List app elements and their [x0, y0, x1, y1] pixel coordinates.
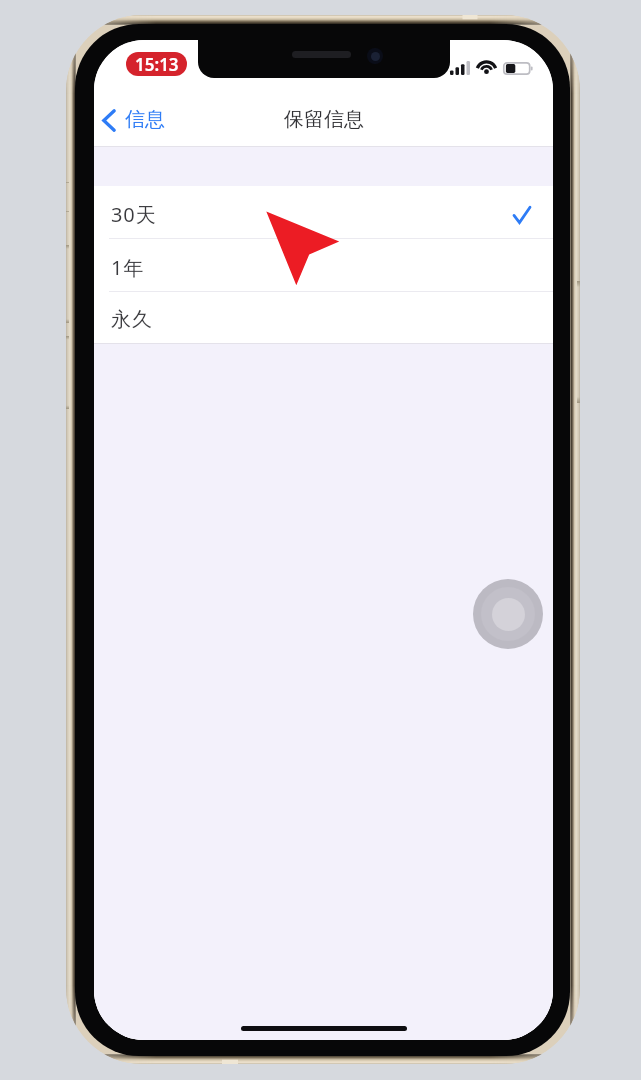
staticText: 永久	[111, 307, 153, 332]
staticText: 1年	[111, 254, 145, 281]
button[interactable]: 1年	[94, 239, 553, 291]
staticText: 保留信息	[284, 107, 364, 132]
staticText: 30天	[111, 201, 157, 228]
button[interactable]: 30天	[94, 186, 553, 238]
button[interactable]: Recording indicator 15:13	[126, 52, 187, 76]
button[interactable]: 信息	[98, 102, 175, 137]
staticText: 15:13	[135, 53, 179, 76]
button[interactable]: 永久	[94, 292, 553, 343]
staticText: 信息	[125, 107, 165, 132]
button[interactable]: AssistiveTouch	[473, 579, 543, 649]
